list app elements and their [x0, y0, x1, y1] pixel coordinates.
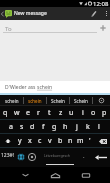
staticText: t	[48, 108, 51, 118]
button[interactable]: D'Wieder ass	[0, 81, 110, 93]
staticText: 123#!	[1, 152, 15, 159]
staticText: k	[86, 122, 90, 132]
staticText: o	[91, 108, 96, 118]
button[interactable]: h	[60, 120, 71, 134]
staticText: m	[77, 136, 84, 146]
button[interactable]: More options	[102, 7, 110, 20]
button[interactable]: Schein	[47, 95, 69, 106]
staticText: '	[89, 136, 91, 146]
button[interactable]: g	[49, 120, 60, 134]
staticText: Lëtzebuergesch	[44, 153, 71, 158]
staticText: s	[20, 122, 24, 132]
button[interactable]: u	[66, 106, 77, 120]
button[interactable]: Attach	[86, 7, 102, 20]
button[interactable]: Settings	[26, 148, 37, 167]
button[interactable]: schein	[24, 95, 46, 106]
button[interactable]: i	[77, 106, 88, 120]
button[interactable]: Back	[17, 167, 33, 183]
button[interactable]: d	[27, 120, 38, 134]
staticText: f	[42, 122, 45, 132]
staticText: schein	[28, 98, 42, 104]
staticText: n	[68, 136, 73, 146]
button[interactable]: n	[65, 134, 75, 148]
button[interactable]: More suggestions	[93, 95, 110, 106]
button[interactable]: e	[22, 106, 33, 120]
staticText: h	[63, 122, 68, 132]
staticText: New message	[14, 10, 47, 17]
staticText: b	[58, 136, 63, 146]
staticText: schein	[5, 98, 19, 104]
button[interactable]: k	[82, 120, 93, 134]
button[interactable]: b	[55, 134, 65, 148]
staticText: c	[38, 136, 42, 146]
button[interactable]: x	[25, 134, 35, 148]
button[interactable]: s	[16, 120, 27, 134]
button[interactable]: .	[77, 148, 91, 167]
staticText: schein	[37, 84, 53, 91]
button[interactable]: schein	[0, 95, 23, 106]
button[interactable]: v	[45, 134, 55, 148]
staticText: i	[82, 108, 84, 118]
staticText: z	[59, 108, 63, 118]
button[interactable]: l	[93, 120, 104, 134]
staticText: j	[76, 122, 78, 132]
staticText: D'Wieder ass	[5, 84, 37, 91]
staticText: a	[9, 122, 13, 132]
button[interactable]: j	[71, 120, 82, 134]
button[interactable]: Navigate up	[0, 7, 5, 20]
staticText: Schein	[74, 98, 88, 104]
staticText: p	[102, 108, 107, 118]
staticText: v	[48, 136, 52, 146]
staticText: u	[69, 108, 74, 118]
button[interactable]: Add recipient	[99, 24, 107, 32]
button[interactable]: p	[99, 106, 110, 120]
staticText: Schein	[51, 98, 65, 104]
staticText: e	[26, 108, 30, 118]
staticText: x	[28, 136, 32, 146]
button[interactable]: Home	[47, 167, 63, 183]
button[interactable]: Delete	[95, 134, 110, 148]
button[interactable]: w	[11, 106, 22, 120]
staticText: w	[14, 108, 20, 118]
button[interactable]: t	[44, 106, 55, 120]
button[interactable]: Schein	[70, 95, 92, 106]
button[interactable]: c	[35, 134, 45, 148]
button[interactable]: m	[75, 134, 85, 148]
staticText: 12:08	[93, 0, 109, 7]
button[interactable]: f	[38, 120, 49, 134]
button[interactable]: Switch language	[15, 148, 26, 167]
button[interactable]: o	[88, 106, 99, 120]
button[interactable]: z	[55, 106, 66, 120]
button[interactable]: Enter	[91, 148, 110, 167]
button[interactable]: Space	[37, 148, 77, 167]
button[interactable]: y	[15, 134, 25, 148]
button[interactable]: Shift	[0, 134, 15, 148]
staticText: q	[3, 108, 8, 118]
staticText: d	[30, 122, 35, 132]
staticText: To	[5, 25, 12, 33]
button[interactable]: Recent apps	[78, 167, 94, 183]
staticText: y	[18, 136, 22, 146]
button[interactable]: r	[33, 106, 44, 120]
button[interactable]: '	[85, 134, 95, 148]
staticText: r	[37, 108, 40, 118]
button[interactable]: a	[5, 120, 16, 134]
staticText: l	[98, 122, 100, 132]
staticText: .	[83, 152, 85, 160]
button[interactable]: q	[0, 106, 11, 120]
button[interactable]: 123#!	[0, 148, 15, 167]
staticText: g	[52, 122, 57, 132]
